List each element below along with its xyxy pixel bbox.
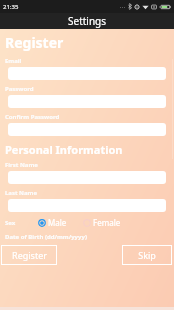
staticText: 21:35 — [3, 3, 19, 11]
button[interactable] — [8, 171, 166, 184]
staticText: Password — [5, 85, 34, 93]
staticText: Female — [93, 217, 121, 228]
button[interactable] — [8, 199, 166, 212]
staticText: Male — [48, 217, 67, 228]
staticText: Confirm Password — [5, 113, 60, 121]
staticText: Settings — [68, 14, 107, 28]
staticText: Date of Birth (dd/mm/yyyy) — [5, 233, 87, 241]
button[interactable]: Register — [1, 245, 57, 265]
staticText: Skip — [138, 249, 156, 261]
staticText: Personal Information — [5, 142, 123, 157]
staticText: Last Name — [5, 189, 38, 197]
button[interactable]: Male — [38, 217, 67, 228]
staticText: Register — [5, 33, 64, 52]
staticText: Sex — [5, 219, 16, 227]
button[interactable]: Female — [83, 217, 121, 228]
staticText: Email — [5, 57, 22, 65]
button[interactable]: Skip — [122, 245, 172, 265]
staticText: First Name — [5, 161, 38, 169]
staticText: Register — [12, 249, 47, 261]
